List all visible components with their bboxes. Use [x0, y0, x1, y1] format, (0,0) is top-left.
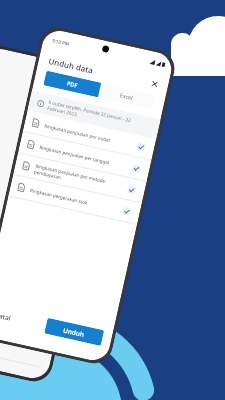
staticText: Ringkasan penjualan per metode pembayara…	[34, 162, 129, 195]
button[interactable]: Close	[148, 77, 160, 89]
button[interactable]: Checked	[136, 142, 146, 152]
button[interactable]: Ringkasan penjualan per tanggal	[18, 132, 151, 181]
staticText: Excel	[119, 91, 134, 101]
button[interactable]: Batal	[0, 305, 16, 327]
button[interactable]: Ringkasan penjualan per outlet	[23, 110, 156, 160]
staticText: Unduh data	[48, 55, 95, 76]
button[interactable]: Checked	[127, 185, 136, 195]
staticText: PDF	[67, 79, 79, 89]
staticText: Batal	[0, 310, 12, 323]
button[interactable]: Ringkasan pergerakan stok	[8, 175, 142, 224]
staticText: 5 outlet terpilih. Periode 22 Januari - …	[47, 99, 132, 129]
staticText: 5:13 PM	[52, 37, 70, 47]
button[interactable]: Unduh	[44, 318, 104, 346]
button[interactable]: Excel	[98, 83, 156, 110]
staticText: Unduh	[62, 326, 86, 339]
staticText: Ringkasan penjualan per outlet	[44, 122, 138, 149]
staticText: Ringkasan penjualan per tanggal	[39, 144, 133, 171]
button[interactable]: Checked	[132, 164, 141, 173]
button[interactable]: PDF	[43, 71, 101, 97]
button[interactable]: Checked	[122, 207, 132, 216]
button[interactable]: Ringkasan penjualan per metode pembayara…	[13, 153, 147, 203]
staticText: Ringkasan pergerakan stok	[29, 187, 123, 213]
